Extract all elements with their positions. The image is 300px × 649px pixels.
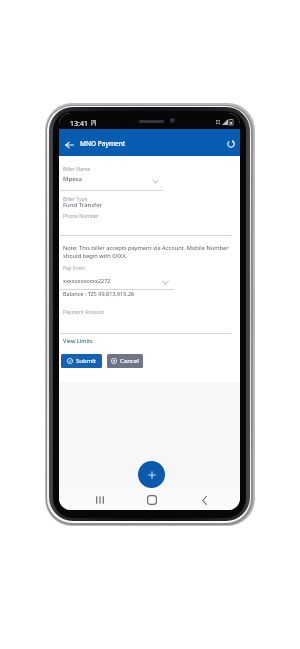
staticText: Pay From — [63, 265, 85, 272]
staticText: Fund Transfer — [63, 201, 103, 209]
staticText: Mpesa — [63, 175, 82, 183]
button[interactable]: Recents — [86, 492, 114, 508]
staticText: View Limits — [63, 337, 93, 344]
button[interactable]: Refresh — [216, 129, 240, 156]
button[interactable]: View Limits — [63, 337, 93, 344]
button[interactable]: Add — [138, 461, 165, 488]
button[interactable]: Back — [190, 492, 218, 508]
staticText: 13:41 — [70, 119, 88, 129]
staticText: xxxxxxxxxxxx2272 — [63, 277, 111, 284]
button[interactable]: Back — [59, 129, 80, 156]
button[interactable]: Cancel — [107, 354, 143, 368]
staticText: MNO Payment — [80, 139, 126, 148]
staticText: Submit — [76, 357, 97, 365]
button[interactable]: Home — [138, 492, 166, 508]
staticText: Note: This biller accepts payment via Ac… — [63, 244, 234, 260]
staticText: Cancel — [120, 357, 139, 365]
staticText: Payment Amount — [63, 309, 104, 316]
staticText: Biller Type — [63, 196, 88, 203]
button[interactable]: Submit — [61, 354, 102, 368]
staticText: Phone Number — [63, 213, 99, 220]
staticText: Biller Name — [63, 166, 91, 173]
staticText: Balance : TZS 99,813,915.26 — [63, 290, 135, 297]
